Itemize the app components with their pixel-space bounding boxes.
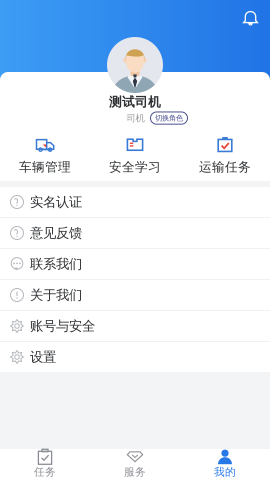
staticText: 车辆管理: [19, 159, 71, 175]
button[interactable]: 设置: [0, 342, 270, 372]
staticText: 安全学习: [109, 159, 161, 175]
staticText: 运输任务: [199, 159, 251, 175]
button[interactable]: 意见反馈: [0, 218, 270, 249]
button[interactable]: 服务: [90, 445, 180, 479]
staticText: 测试司机: [109, 94, 161, 110]
staticText: 账号与安全: [30, 318, 95, 334]
staticText: 我的: [214, 465, 236, 479]
button[interactable]: 联系我们: [0, 249, 270, 280]
button[interactable]: 关于我们: [0, 280, 270, 311]
staticText: 服务: [124, 465, 146, 479]
button[interactable]: 实名认证: [0, 187, 270, 218]
button[interactable]: 我的: [180, 445, 270, 479]
staticText: 意见反馈: [30, 225, 82, 241]
staticText: 联系我们: [30, 256, 82, 272]
button[interactable]: 切换角色: [150, 112, 187, 124]
button[interactable]: 任务: [0, 445, 90, 479]
staticText: 切换角色: [155, 113, 183, 123]
staticText: 设置: [30, 349, 56, 365]
button[interactable]: Notifications: [236, 4, 265, 33]
button[interactable]: 车辆管理: [0, 133, 90, 179]
staticText: 实名认证: [30, 194, 82, 210]
button[interactable]: 安全学习: [90, 133, 180, 179]
staticText: 司机: [126, 112, 144, 124]
staticText: 关于我们: [30, 287, 82, 303]
button[interactable]: 运输任务: [180, 133, 270, 179]
button[interactable]: 账号与安全: [0, 311, 270, 342]
staticText: 任务: [34, 465, 56, 479]
